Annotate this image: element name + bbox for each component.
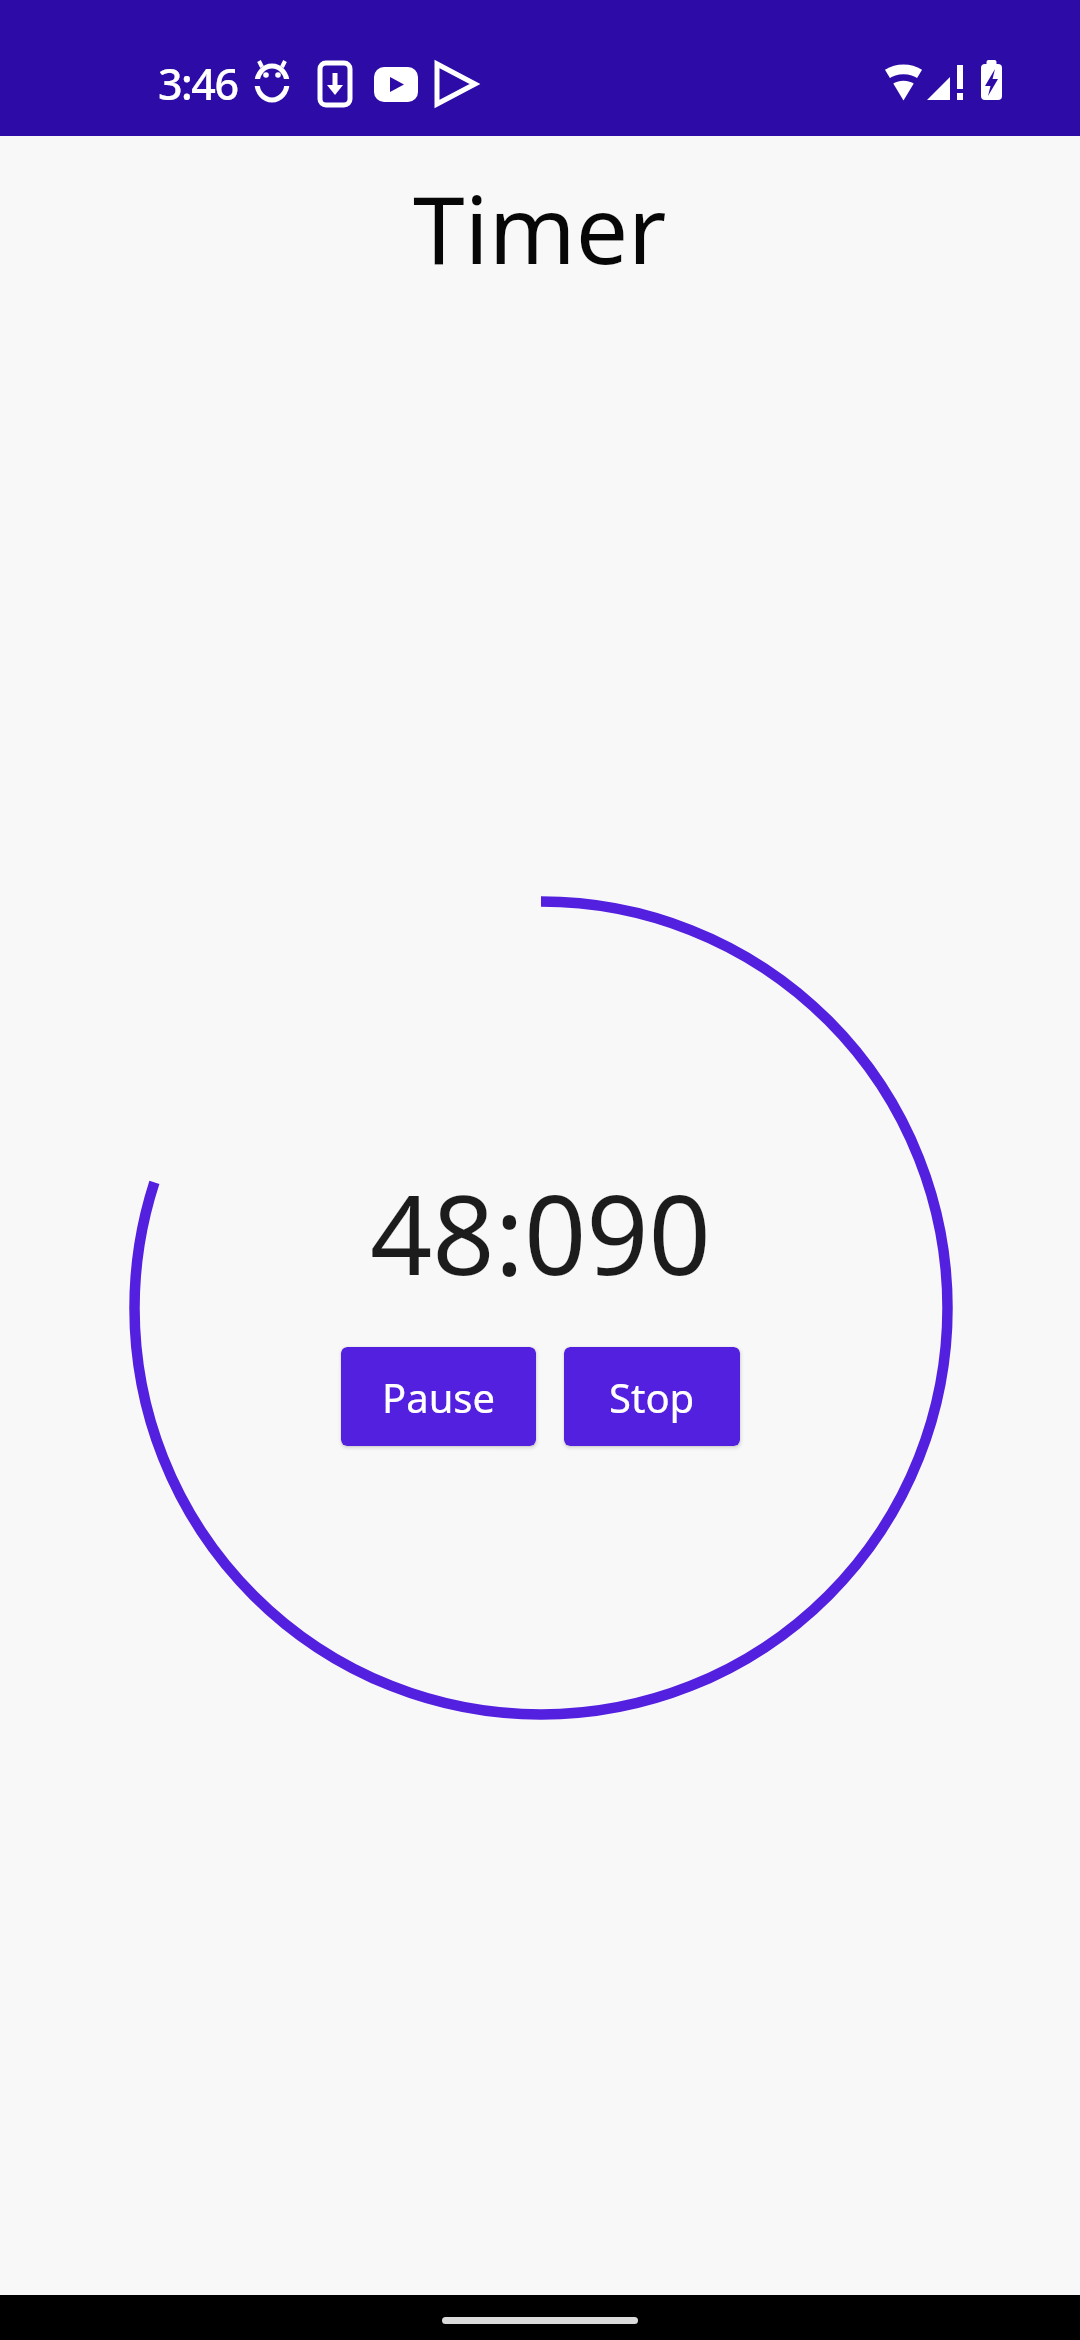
staticText: Pause <box>382 1370 496 1424</box>
button[interactable]: Pause <box>341 1347 536 1446</box>
button[interactable]: Stop <box>564 1347 740 1446</box>
staticText: 3:46 <box>158 54 238 113</box>
staticText: 48:090 <box>370 1158 711 1306</box>
staticText: Stop <box>609 1370 695 1424</box>
staticText: Timer <box>413 165 667 292</box>
